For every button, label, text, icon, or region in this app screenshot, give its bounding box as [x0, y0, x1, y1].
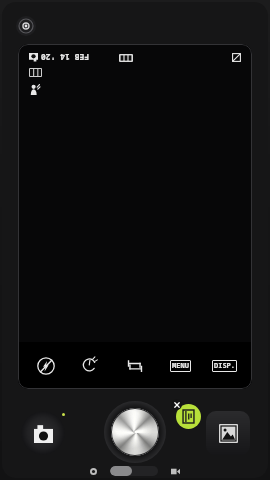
- button[interactable]: Gallery: [206, 411, 250, 455]
- staticText: FEB 14 '20: [41, 52, 89, 63]
- button[interactable]: Mode dial: [111, 408, 159, 456]
- button[interactable]: Flash off: [29, 351, 63, 381]
- button[interactable]: Close: [171, 399, 182, 410]
- button[interactable]: Mode switch: [110, 466, 158, 476]
- staticText: MENU: [172, 361, 189, 371]
- button[interactable]: Self timer off: [73, 351, 107, 381]
- button[interactable]: DISP.: [207, 351, 241, 381]
- button[interactable]: Shutter: [21, 411, 65, 455]
- button[interactable]: MENU: [163, 351, 197, 381]
- button[interactable]: App shortcut: [176, 404, 201, 429]
- button[interactable]: Power: [16, 16, 36, 36]
- staticText: DISP.: [214, 361, 235, 371]
- button[interactable]: Drive mode: [118, 351, 152, 381]
